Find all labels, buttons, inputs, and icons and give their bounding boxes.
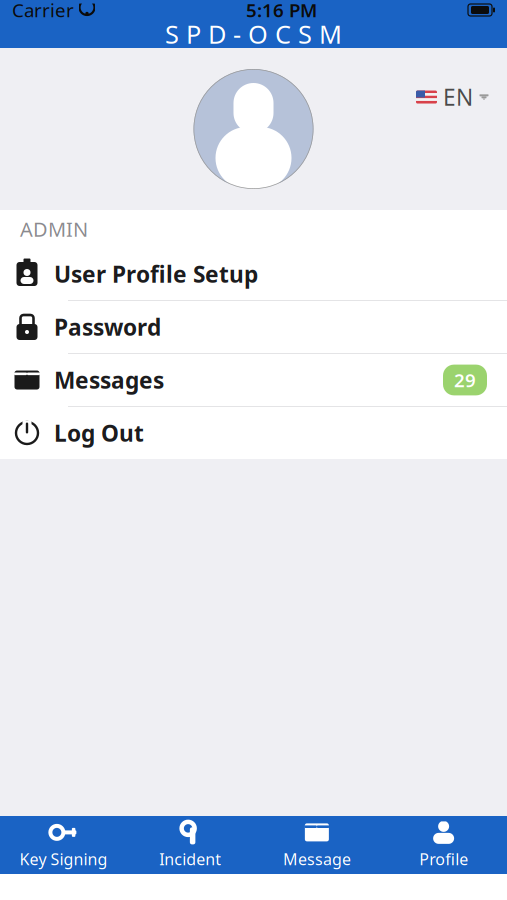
- button[interactable]: Key Signing: [0, 814, 127, 876]
- staticText: Password: [54, 312, 161, 342]
- button[interactable]: Profile: [380, 814, 507, 876]
- button[interactable]: Messages: [0, 354, 507, 407]
- button[interactable]: Password: [0, 301, 507, 354]
- staticText: 29: [454, 368, 476, 392]
- staticText: Log Out: [54, 418, 144, 448]
- staticText: ADMIN: [20, 216, 88, 242]
- button[interactable]: Message: [253, 814, 380, 876]
- button[interactable]: Incident: [127, 814, 254, 876]
- staticText: User Profile Setup: [54, 259, 258, 289]
- button[interactable]: User Profile Setup: [0, 248, 507, 301]
- staticText: Carrier: [12, 0, 74, 22]
- staticText: Key Signing: [19, 848, 107, 870]
- staticText: Message: [283, 848, 351, 870]
- staticText: Messages: [54, 365, 164, 395]
- button[interactable]: Log Out: [0, 407, 507, 459]
- staticText: 5:16 PM: [246, 0, 317, 22]
- staticText: EN: [443, 82, 473, 112]
- staticText: S P D - O C S M: [165, 17, 342, 51]
- button[interactable]: Select language, English: [412, 78, 493, 116]
- staticText: Incident: [159, 848, 221, 870]
- staticText: Profile: [419, 848, 468, 870]
